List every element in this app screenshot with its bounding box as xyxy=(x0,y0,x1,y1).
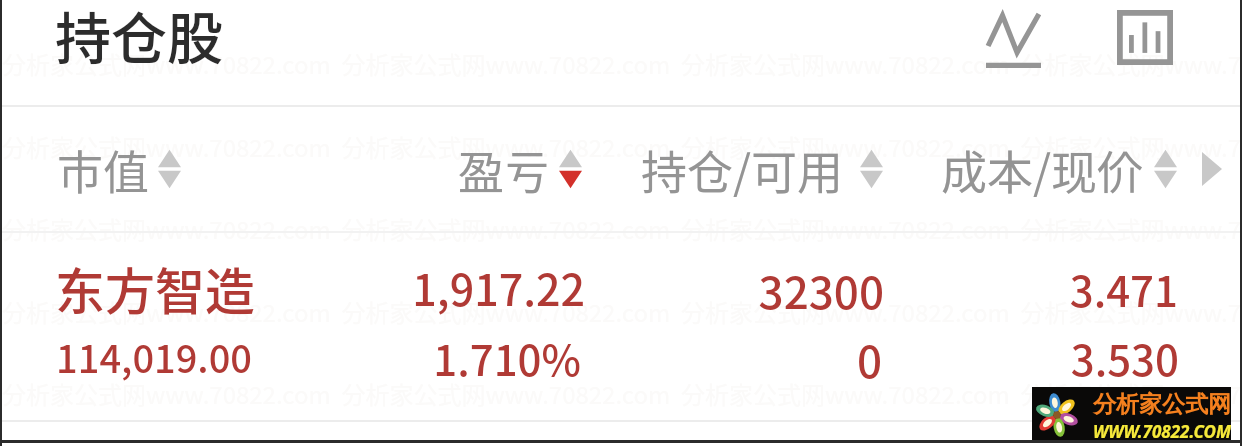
staticText: 持仓/可用 xyxy=(641,136,844,202)
staticText: 持仓股 xyxy=(55,0,223,75)
staticText: 1,917.22 xyxy=(412,256,585,318)
staticText: 市值 xyxy=(57,136,149,202)
staticText: 3.530 xyxy=(1070,327,1179,388)
staticText: WWW.70822.COM xyxy=(1093,420,1231,442)
staticText: 分析家公式网www.70822.com 分析家公式网www.70822.com … xyxy=(2,46,1242,81)
button[interactable]: 市值 xyxy=(57,136,181,202)
staticText: 分析家公式网www.70822.com 分析家公式网www.70822.com … xyxy=(2,129,1242,164)
staticText: 盈亏 xyxy=(458,136,550,202)
button[interactable]: 成本/现价 xyxy=(941,136,1229,202)
button[interactable]: Line chart xyxy=(972,13,1055,68)
staticText: 成本/现价 xyxy=(941,136,1144,202)
button[interactable]: Bar chart xyxy=(1103,10,1186,65)
staticText: 东方智造 xyxy=(55,252,255,324)
button[interactable]: More columns xyxy=(1195,149,1229,189)
staticText: 0 xyxy=(856,327,882,391)
button[interactable]: 盈亏 xyxy=(458,136,582,202)
staticText: 分析家公式网 xyxy=(1093,390,1231,419)
staticText: 分析家公式网www.70822.com 分析家公式网www.70822.com … xyxy=(2,376,1242,411)
button[interactable]: 持仓/可用 xyxy=(641,136,883,202)
staticText: 1.710% xyxy=(433,327,581,388)
staticText: 分析家公式网www.70822.com 分析家公式网www.70822.com … xyxy=(2,294,1242,329)
staticText: 分析家公式网www.70822.com 分析家公式网www.70822.com … xyxy=(2,211,1242,246)
staticText: 32300 xyxy=(758,258,884,322)
button[interactable]: 东方智造 xyxy=(0,230,1242,420)
staticText: 3.471 xyxy=(1069,258,1178,319)
staticText: 114,019.00 xyxy=(56,329,252,384)
